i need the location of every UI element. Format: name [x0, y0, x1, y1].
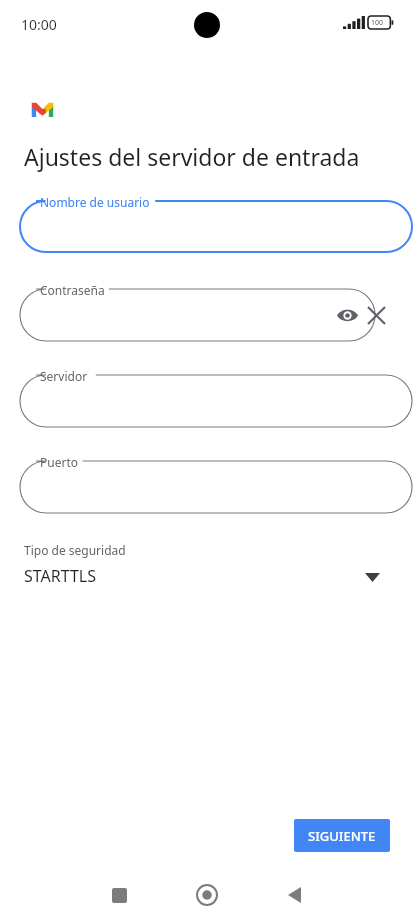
button[interactable]: Recientes: [94, 870, 144, 920]
button[interactable]: Servidor: [20, 375, 412, 427]
staticText: SIGUIENTE: [308, 827, 376, 845]
button[interactable]: Atrás: [269, 870, 319, 920]
staticText: 100: [371, 18, 384, 28]
button[interactable]: Borrar: [361, 300, 391, 330]
staticText: 10:00: [21, 15, 57, 34]
button[interactable]: Puerto: [20, 461, 412, 513]
staticText: Ajustes del servidor de entrada: [24, 141, 360, 172]
staticText: STARTTLS: [24, 565, 97, 587]
button[interactable]: Tipo de seguridad: [0, 536, 413, 598]
button[interactable]: Mostrar contraseña: [333, 301, 361, 329]
button[interactable]: Inicio: [182, 870, 232, 920]
staticText: Contraseña: [40, 282, 105, 298]
button[interactable]: Contraseña: [20, 289, 375, 341]
staticText: Nombre de usuario: [40, 194, 150, 210]
staticText: Servidor: [40, 368, 88, 384]
button[interactable]: SIGUIENTE: [294, 819, 390, 852]
staticText: Puerto: [40, 454, 78, 470]
button[interactable]: Nombre de usuario: [20, 201, 412, 252]
staticText: Tipo de seguridad: [24, 542, 126, 558]
